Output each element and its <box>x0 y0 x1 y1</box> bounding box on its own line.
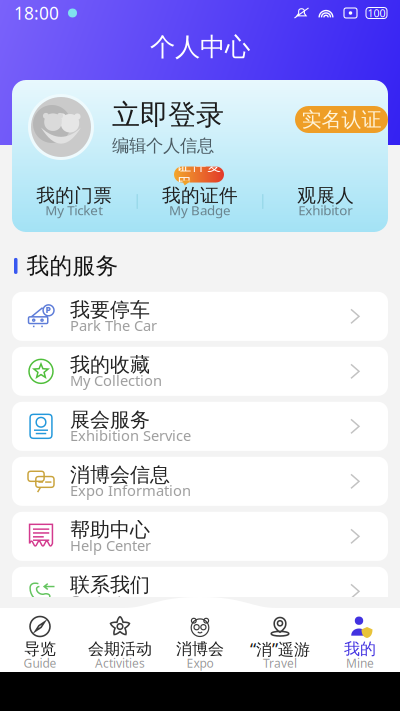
staticText: 我的服务 <box>26 252 118 280</box>
staticText: Expo <box>186 655 213 671</box>
staticText: My Badge <box>169 201 231 219</box>
staticText: My Collection <box>70 371 162 390</box>
staticText: 消博会 <box>176 639 224 659</box>
button[interactable]: 我的 <box>320 616 400 668</box>
staticText: 立即登录 <box>112 98 224 132</box>
staticText: 导览 <box>24 639 56 659</box>
staticText: Contact us <box>70 591 142 610</box>
button[interactable]: 我的收藏 <box>12 347 388 396</box>
staticText: Park The Car <box>70 316 157 335</box>
staticText: 我的证件 <box>162 184 238 207</box>
staticText: Mine <box>346 655 374 671</box>
staticText: Exhibition Service <box>70 426 191 445</box>
staticText: 100 <box>367 6 385 20</box>
button[interactable]: 会期活动 <box>80 616 160 668</box>
staticText: 18:00 <box>14 1 59 24</box>
staticText: My Ticket <box>45 201 103 219</box>
staticText: 观展人 <box>297 184 354 207</box>
staticText: 实名认证 <box>301 107 381 132</box>
staticText: 我的门票 <box>36 184 112 207</box>
staticText: 我的 <box>344 639 376 659</box>
button[interactable]: 我的门票 <box>12 187 137 216</box>
button[interactable]: 展会服务 <box>12 402 388 451</box>
button[interactable]: 导览 <box>0 616 80 668</box>
staticText: 我要停车 <box>70 298 150 322</box>
staticText: “消”遥游 <box>250 638 310 660</box>
button[interactable]: 消博会信息 <box>12 457 388 506</box>
staticText: 证件复用 <box>176 156 221 192</box>
button[interactable]: 联系我们 <box>12 567 388 616</box>
staticText: Exhibitor <box>298 201 353 219</box>
button[interactable]: 实名认证 <box>295 106 388 133</box>
staticText: Activities <box>95 655 145 671</box>
staticText: 展会服务 <box>70 408 150 432</box>
staticText: 会期活动 <box>88 639 152 659</box>
staticText: 我的收藏 <box>70 353 150 377</box>
staticText: Expo Information <box>70 481 191 500</box>
staticText: 消博会信息 <box>70 463 170 487</box>
button[interactable]: 我的证件 <box>138 187 262 216</box>
button[interactable]: “消”遥游 <box>240 616 320 668</box>
button[interactable]: 消博会 <box>160 616 240 668</box>
staticText: Guide <box>23 655 56 671</box>
staticText: Help Center <box>70 536 151 555</box>
button[interactable]: 帮助中心 <box>12 512 388 561</box>
staticText: 帮助中心 <box>70 518 150 542</box>
staticText: Travel <box>263 655 297 671</box>
staticText: 个人中心 <box>150 31 250 62</box>
staticText: 联系我们 <box>70 573 150 597</box>
button[interactable]: 我要停车 <box>12 292 388 341</box>
staticText: 编辑个人信息 <box>112 135 214 156</box>
button[interactable]: 观展人 <box>263 187 388 216</box>
